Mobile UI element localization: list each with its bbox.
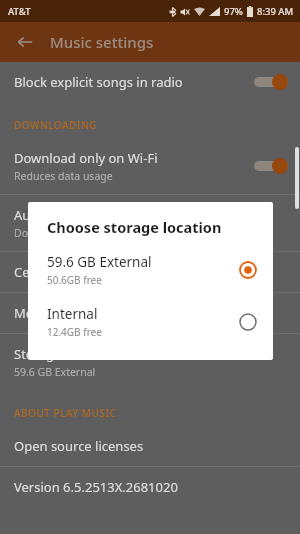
staticText: Download only on Wi-Fi — [14, 149, 158, 167]
staticText: 59.6 GB External — [14, 365, 96, 379]
staticText: 12.4GB free — [47, 325, 102, 339]
button[interactable]: Storage location — [0, 334, 300, 390]
staticText: Block explicit songs in radio — [14, 73, 183, 91]
button[interactable]: Internal — [28, 302, 273, 342]
staticText: Audio quality — [14, 206, 95, 224]
staticText: 50.6GB free — [47, 273, 102, 287]
staticText: Reduces data usage — [14, 169, 113, 183]
button[interactable]: Back — [12, 29, 38, 55]
staticText: ABOUT PLAY MUSIC — [14, 406, 117, 420]
staticText: Music settings — [50, 32, 154, 52]
staticText: Storage location — [14, 345, 114, 363]
button[interactable]: Open source licenses — [0, 426, 300, 466]
staticText: 8:39 AM — [257, 5, 294, 18]
staticText: Mobile networks — [14, 304, 116, 322]
staticText: Download over mobile network: High — [14, 226, 198, 240]
staticText: 97% — [224, 5, 243, 18]
staticText: DOWNLOADING — [14, 118, 97, 132]
button[interactable]: Audio quality — [0, 195, 300, 251]
button[interactable]: Version 6.5.2513X.2681020 — [0, 467, 300, 507]
button[interactable]: Block explicit songs in radio — [0, 62, 300, 102]
button[interactable]: Cellular streaming quality — [0, 252, 300, 292]
button[interactable]: 59.6 GB External — [28, 250, 273, 290]
staticText: AT&T — [8, 5, 31, 18]
button[interactable]: Mobile networks — [0, 293, 300, 333]
button[interactable]: Download only on Wi-Fi — [0, 138, 300, 194]
staticText: Open source licenses — [14, 437, 144, 455]
staticText: Version 6.5.2513X.2681020 — [14, 478, 178, 496]
staticText: Internal — [47, 305, 98, 323]
staticText: 59.6 GB External — [47, 253, 152, 271]
staticText: Choose storage location — [47, 217, 222, 237]
staticText: Cellular streaming quality — [14, 263, 171, 281]
